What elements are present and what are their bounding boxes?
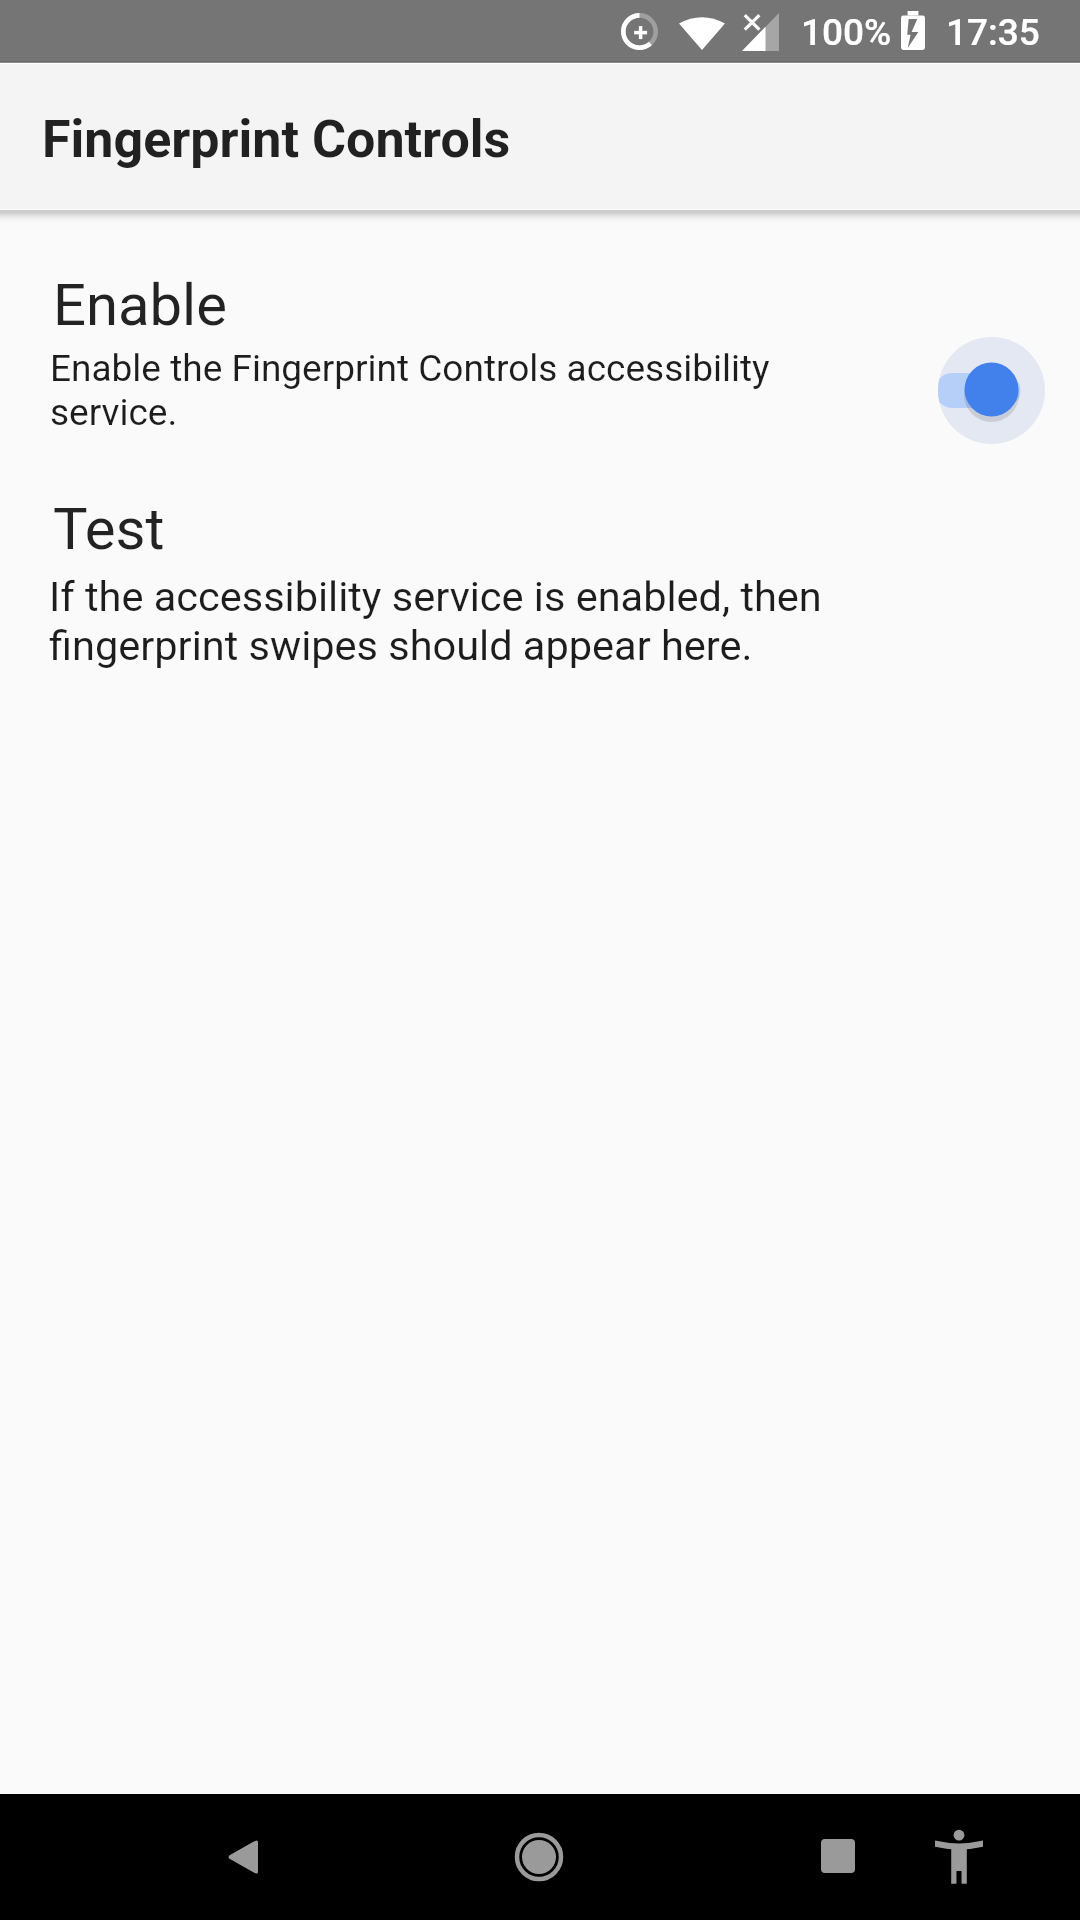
button[interactable]: Accessibility	[904, 1801, 1014, 1911]
staticText: If the accessibility service is enabled,…	[49, 572, 849, 670]
button[interactable]: Recent apps	[783, 1801, 893, 1911]
button[interactable]: Enable	[0, 250, 1080, 465]
button[interactable]: Back	[182, 1797, 302, 1917]
staticText: Enable the Fingerprint Controls accessib…	[50, 347, 790, 434]
button[interactable]: Test	[0, 478, 1080, 688]
staticText: 17:35	[946, 11, 1040, 54]
staticText: Fingerprint Controls	[42, 109, 511, 170]
button[interactable]: Home	[479, 1797, 599, 1917]
staticText: Test	[53, 495, 165, 563]
button[interactable]: Enable Fingerprint Controls accessibilit…	[938, 337, 1045, 444]
staticText: 100%	[801, 11, 892, 54]
staticText: Enable	[53, 271, 227, 339]
